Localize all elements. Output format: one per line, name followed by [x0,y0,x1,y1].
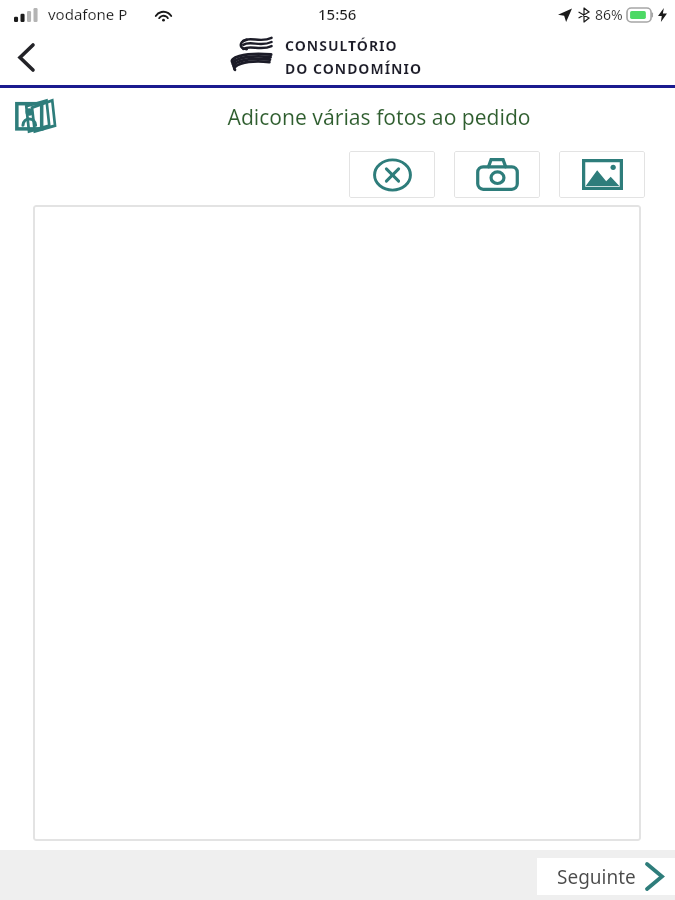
button[interactable]: Back [0,31,52,83]
button[interactable]: Selected photos area [33,205,641,841]
staticText: DO CONDOMÍNIO [285,59,422,78]
staticText: Adicone várias fotos ao pedido [227,103,531,132]
button[interactable]: Seguinte [537,858,675,895]
button[interactable]: Photos [11,93,65,141]
staticText: Seguinte [557,864,636,890]
button[interactable]: Choose from gallery [559,151,645,198]
staticText: vodafone P [48,4,128,24]
button[interactable]: Clear photos [349,151,435,198]
staticText: 86% [595,5,623,24]
staticText: CONSULTÓRIO [285,36,398,55]
staticText: 15:56 [318,4,357,24]
button[interactable]: Take photo [454,151,540,198]
